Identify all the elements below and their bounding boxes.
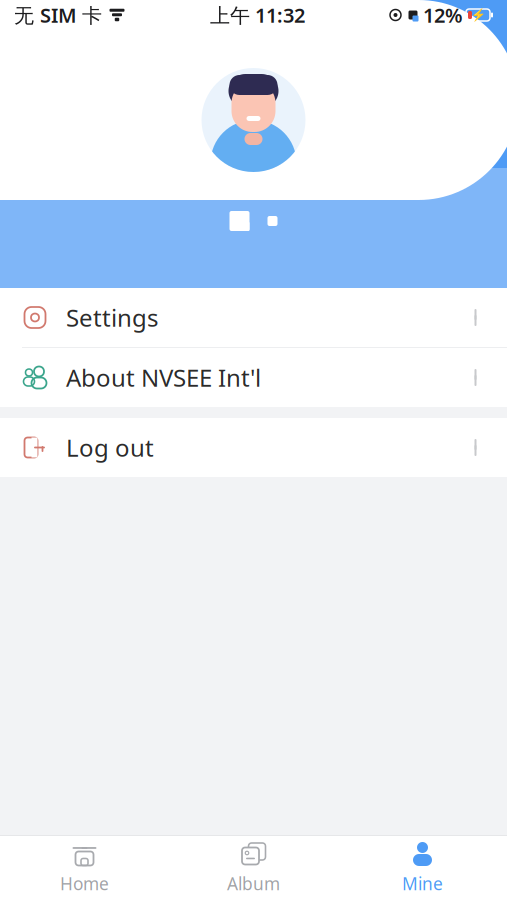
staticText: About NVSEE Int'l <box>66 362 261 393</box>
staticText: 上午 11:32 <box>210 2 305 28</box>
staticText: Log out <box>66 432 154 463</box>
button[interactable]: Mine <box>338 836 507 900</box>
staticText: 无 SIM 卡 <box>14 2 102 28</box>
staticText: ⚡ <box>470 8 485 22</box>
button[interactable]: About NVSEE Int'l <box>0 348 507 407</box>
staticText: Mine <box>402 872 443 895</box>
staticText: 12% <box>423 2 463 28</box>
staticText: Album <box>227 872 280 895</box>
button[interactable]: Home <box>0 836 169 900</box>
button[interactable]: Album <box>169 836 338 900</box>
button[interactable]: Settings <box>0 288 507 347</box>
button[interactable]: Log out <box>0 418 507 477</box>
staticText: Home <box>60 872 109 895</box>
staticText: Settings <box>66 302 158 333</box>
